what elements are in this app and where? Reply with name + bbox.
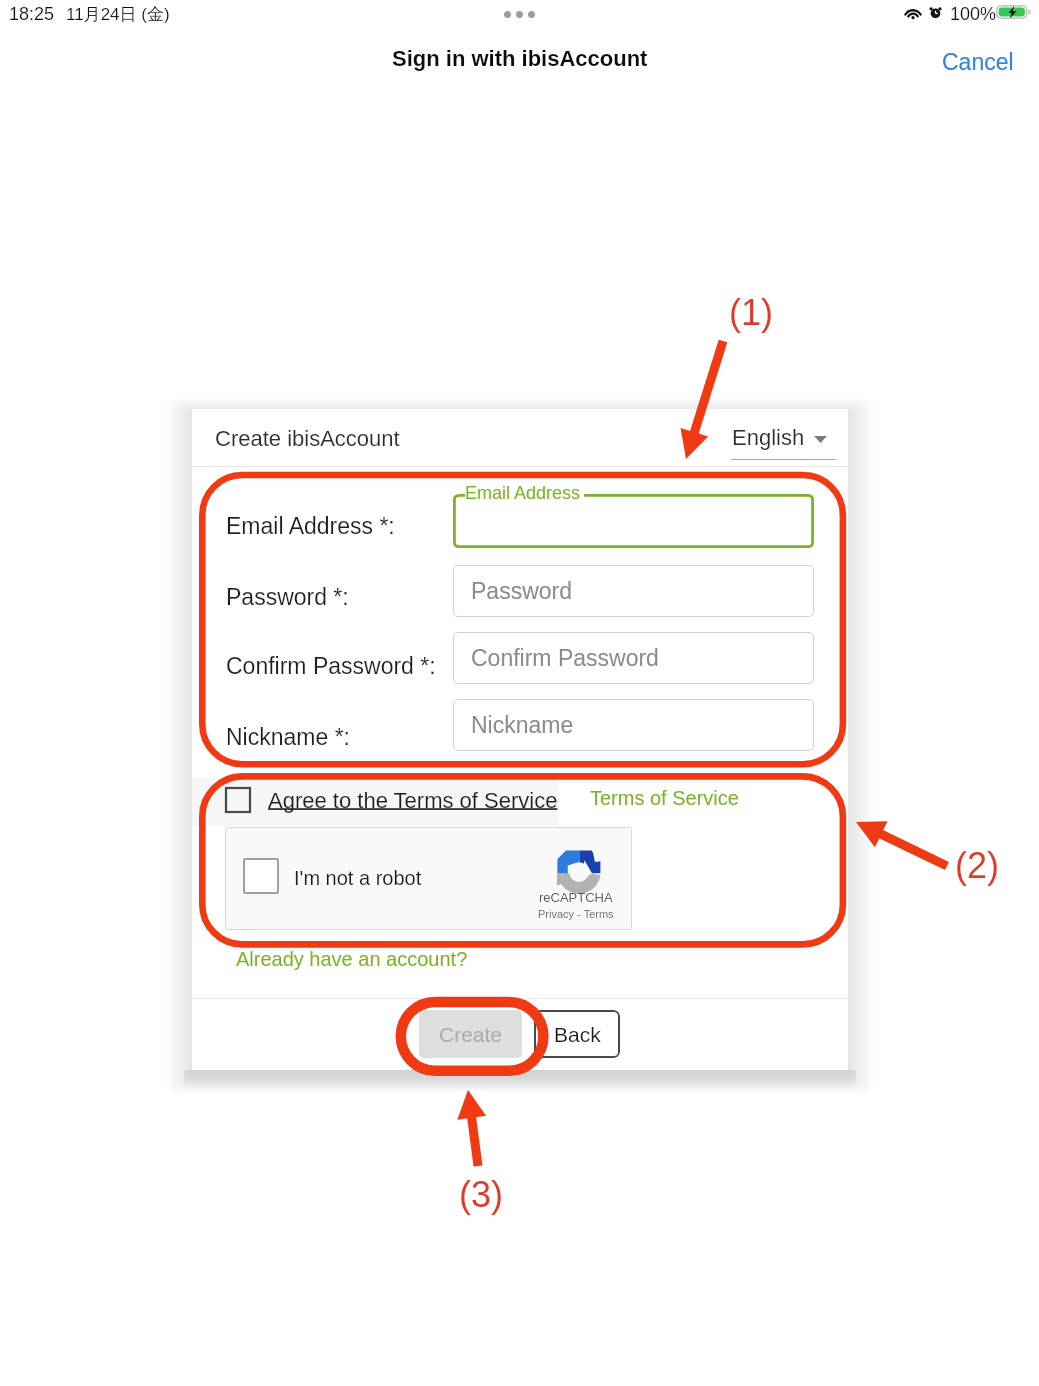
staticText: Privacy - Terms xyxy=(538,908,614,920)
button[interactable]: Already have an account? xyxy=(232,948,472,970)
staticText: (3) xyxy=(459,1174,503,1214)
staticText: Create xyxy=(439,1023,503,1046)
staticText: Email Address *: xyxy=(226,513,395,539)
button[interactable]: Language English xyxy=(727,421,839,465)
staticText: 18:25 xyxy=(9,4,55,24)
staticText: I'm not a robot xyxy=(294,867,422,889)
staticText: Back xyxy=(554,1023,601,1046)
button[interactable]: I'm not a robot checkbox xyxy=(243,858,279,894)
staticText: Password *: xyxy=(226,584,349,610)
button[interactable]: Back xyxy=(534,1010,620,1058)
staticText: Nickname xyxy=(471,712,574,738)
staticText: Nickname *: xyxy=(226,724,350,750)
staticText: (1) xyxy=(729,292,773,332)
button[interactable]: Nickname xyxy=(453,699,814,751)
button[interactable]: Agree to the Terms of Service xyxy=(226,788,575,821)
staticText: 100% xyxy=(950,4,997,24)
staticText: 11月24日 (金) xyxy=(66,4,170,25)
staticText: Cancel xyxy=(942,49,1014,75)
staticText: Already have an account? xyxy=(236,948,468,970)
staticText: Confirm Password xyxy=(471,645,659,671)
staticText: Confirm Password *: xyxy=(226,653,436,679)
button[interactable]: Confirm Password xyxy=(453,632,814,684)
staticText: (2) xyxy=(955,845,999,885)
button[interactable]: Password xyxy=(453,565,814,617)
staticText: Agree to the Terms of Service xyxy=(268,788,558,813)
staticText: English xyxy=(732,425,805,450)
staticText: Terms of Service xyxy=(590,787,739,809)
button[interactable]: Cancel xyxy=(942,49,1014,75)
staticText: Create ibisAccount xyxy=(215,426,400,451)
staticText: Password xyxy=(471,578,572,604)
staticText: Sign in with ibisAccount xyxy=(392,46,648,71)
staticText: reCAPTCHA xyxy=(539,890,613,905)
button[interactable]: Create xyxy=(419,1010,522,1058)
button[interactable]: Terms of Service xyxy=(586,783,743,813)
staticText: Email Address xyxy=(465,483,581,503)
